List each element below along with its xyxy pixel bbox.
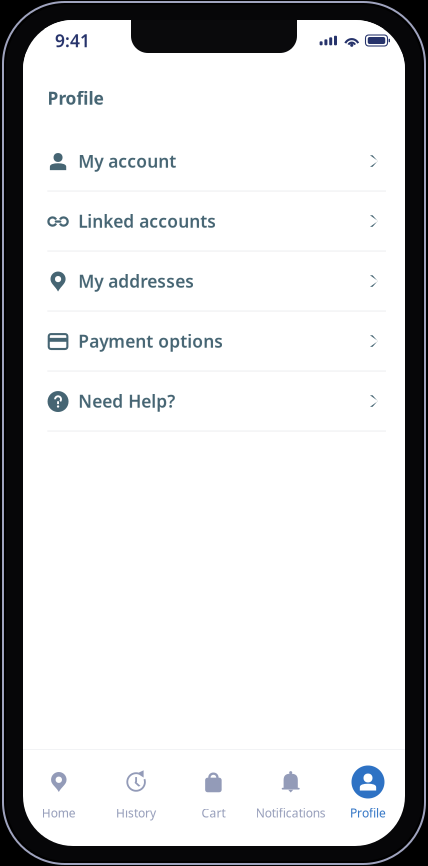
staticText: Profile bbox=[47, 86, 103, 109]
staticText: History bbox=[116, 805, 156, 821]
button[interactable]: Cart bbox=[175, 765, 252, 821]
staticText: Home bbox=[42, 805, 76, 821]
staticText: My addresses bbox=[78, 269, 194, 292]
button[interactable]: Linked accounts bbox=[23, 191, 405, 251]
button[interactable]: My addresses bbox=[23, 251, 405, 311]
staticText: Cart bbox=[201, 805, 225, 821]
button[interactable]: My account bbox=[23, 131, 405, 191]
staticText: 9:41 bbox=[55, 29, 90, 52]
staticText: Profile bbox=[350, 805, 386, 821]
button[interactable]: History bbox=[97, 765, 175, 821]
staticText: Payment options bbox=[78, 329, 223, 352]
button[interactable]: Profile bbox=[329, 765, 407, 821]
button[interactable]: Need Help? bbox=[23, 371, 405, 431]
button[interactable]: Notifications bbox=[252, 765, 329, 821]
staticText: Linked accounts bbox=[78, 209, 216, 232]
staticText: Need Help? bbox=[78, 389, 175, 412]
staticText: Notifications bbox=[256, 805, 326, 821]
button[interactable]: Home bbox=[20, 765, 97, 821]
staticText: My account bbox=[78, 149, 176, 172]
button[interactable]: Payment options bbox=[23, 311, 405, 371]
